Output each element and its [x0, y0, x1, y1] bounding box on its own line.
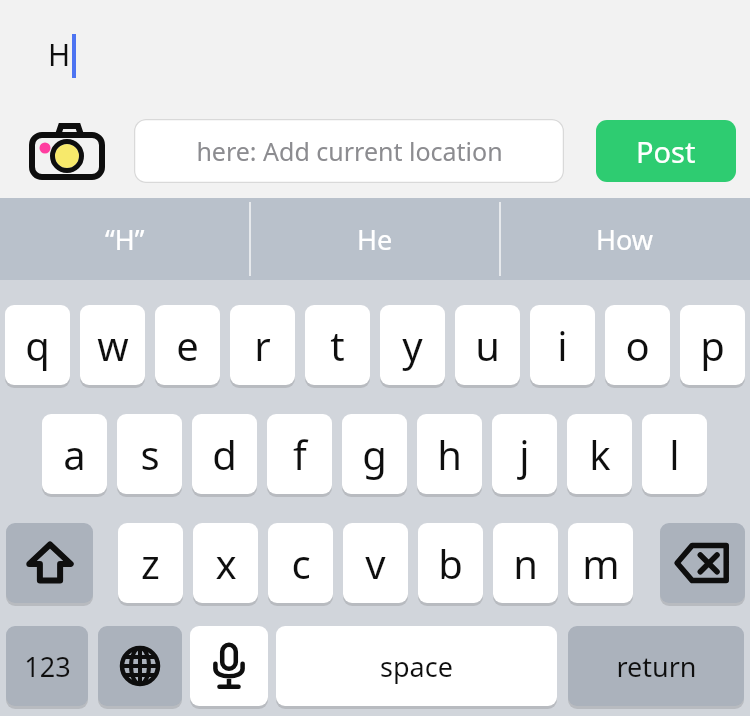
button[interactable]: t — [305, 305, 370, 385]
button[interactable]: He — [250, 198, 500, 280]
staticText: h — [437, 427, 462, 481]
button[interactable]: space — [276, 626, 557, 706]
staticText: q — [25, 318, 50, 372]
button[interactable]: v — [343, 523, 408, 603]
button[interactable]: e — [155, 305, 220, 385]
staticText: a — [63, 427, 86, 481]
staticText: return — [616, 648, 697, 685]
staticText: k — [589, 427, 611, 481]
staticText: s — [140, 427, 160, 481]
button[interactable]: b — [418, 523, 483, 603]
staticText: e — [176, 318, 199, 372]
staticText: “H” — [105, 221, 145, 258]
staticText: Post — [636, 132, 696, 171]
staticText: m — [582, 536, 620, 590]
staticText: n — [513, 536, 538, 590]
button[interactable]: r — [230, 305, 295, 385]
staticText: y — [402, 318, 423, 372]
staticText: l — [669, 427, 680, 481]
staticText: x — [215, 536, 237, 590]
staticText: How — [596, 221, 654, 258]
button[interactable]: s — [117, 414, 182, 494]
staticText: f — [293, 427, 307, 481]
button[interactable]: c — [268, 523, 333, 603]
staticText: c — [291, 536, 311, 590]
button[interactable]: k — [567, 414, 632, 494]
staticText: o — [625, 318, 650, 372]
button[interactable]: a — [42, 414, 107, 494]
button[interactable]: return — [568, 626, 744, 706]
button[interactable]: l — [642, 414, 707, 494]
button[interactable]: x — [193, 523, 258, 603]
staticText: i — [557, 318, 568, 372]
staticText: 123 — [24, 648, 71, 685]
button[interactable]: Post — [596, 120, 736, 182]
button[interactable]: h — [417, 414, 482, 494]
staticText: d — [212, 427, 237, 481]
button[interactable]: m — [568, 523, 633, 603]
staticText: b — [438, 536, 463, 590]
staticText: v — [365, 536, 386, 590]
button[interactable]: i — [530, 305, 595, 385]
staticText: here: Add current location — [196, 134, 503, 168]
button[interactable]: p — [680, 305, 745, 385]
button[interactable]: Change keyboard — [98, 626, 182, 706]
button[interactable]: y — [380, 305, 445, 385]
staticText: t — [330, 318, 345, 372]
staticText: u — [475, 318, 500, 372]
button[interactable]: “H” — [0, 198, 250, 280]
staticText: He — [357, 221, 393, 258]
button[interactable]: z — [118, 523, 183, 603]
staticText: j — [519, 427, 530, 481]
staticText: p — [700, 318, 725, 372]
button[interactable]: f — [267, 414, 332, 494]
button[interactable]: 123 — [6, 626, 88, 706]
button[interactable]: q — [5, 305, 70, 385]
button[interactable]: n — [493, 523, 558, 603]
staticText: w — [97, 318, 129, 372]
staticText: H — [48, 34, 71, 75]
button[interactable]: Camera — [28, 121, 106, 181]
button[interactable]: j — [492, 414, 557, 494]
button[interactable]: g — [342, 414, 407, 494]
button[interactable]: o — [605, 305, 670, 385]
staticText: space — [380, 648, 453, 685]
button[interactable]: Shift — [6, 523, 93, 603]
button[interactable]: u — [455, 305, 520, 385]
button[interactable]: d — [192, 414, 257, 494]
staticText: g — [362, 427, 387, 481]
staticText: z — [141, 536, 160, 590]
staticText: r — [254, 318, 271, 372]
button[interactable]: How — [500, 198, 750, 280]
button[interactable]: Dictate — [190, 626, 268, 706]
button[interactable]: w — [80, 305, 145, 385]
button[interactable]: Backspace — [660, 523, 745, 603]
button[interactable]: here: Add current location — [134, 119, 564, 183]
